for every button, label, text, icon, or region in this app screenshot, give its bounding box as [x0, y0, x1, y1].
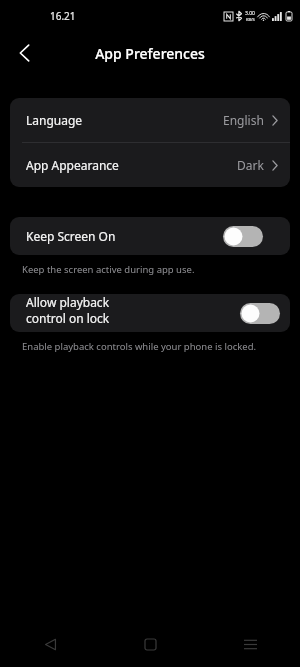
staticText: Keep Screen On: [26, 228, 116, 244]
staticText: English: [223, 112, 264, 128]
staticText: KB/S: [246, 17, 255, 22]
staticText: 16.21: [50, 9, 76, 23]
button[interactable]: Keep Screen On: [10, 217, 290, 255]
button[interactable]: Toggle: [240, 303, 280, 324]
staticText: 3.00: [245, 10, 255, 17]
button[interactable]: Recent apps: [200, 621, 300, 667]
staticText: Enable playback controls while your phon…: [22, 340, 257, 353]
staticText: Dark: [237, 157, 264, 173]
button[interactable]: Allow playback control on lock screen: [10, 294, 290, 332]
button[interactable]: Language: [10, 98, 290, 142]
staticText: App Appearance: [26, 157, 119, 173]
staticText: Language: [26, 112, 83, 128]
staticText: Keep the screen active during app use.: [22, 263, 195, 276]
button[interactable]: App Appearance: [10, 143, 290, 187]
staticText: Allow playback control on lock screen: [26, 294, 133, 332]
button[interactable]: Home: [100, 621, 200, 667]
staticText: App Preferences: [95, 44, 205, 63]
button[interactable]: Back: [0, 621, 100, 667]
button[interactable]: Toggle: [223, 226, 263, 247]
button[interactable]: Back: [6, 35, 42, 71]
